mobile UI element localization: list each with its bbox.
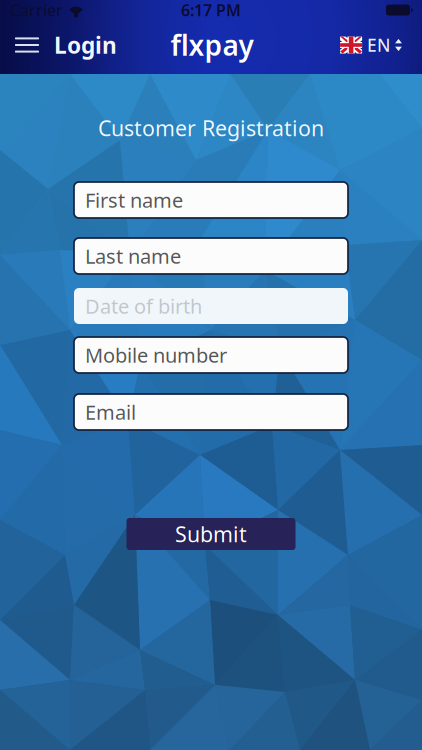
button[interactable]: Select language, English [330, 23, 412, 66]
staticText: Mobile number [85, 342, 227, 368]
staticText: Last name [85, 243, 181, 269]
staticText: First name [85, 187, 183, 213]
button[interactable]: Email [74, 394, 348, 430]
staticText: Email [85, 399, 136, 425]
staticText: Login [54, 30, 117, 60]
staticText: EN [367, 33, 390, 56]
staticText: 6:17 PM [181, 0, 241, 21]
staticText: Date of birth [85, 293, 202, 319]
button[interactable]: Login [1, 20, 131, 70]
staticText: Carrier [10, 0, 63, 21]
button[interactable]: Mobile number [74, 337, 348, 373]
button[interactable]: First name [74, 182, 348, 218]
staticText: Customer Registration [98, 114, 324, 142]
button[interactable]: Last name [74, 238, 348, 274]
staticText: Submit [175, 520, 247, 548]
button[interactable]: Date of birth [74, 288, 348, 324]
button[interactable]: Submit [126, 518, 295, 550]
staticText: flxpay [170, 26, 253, 64]
